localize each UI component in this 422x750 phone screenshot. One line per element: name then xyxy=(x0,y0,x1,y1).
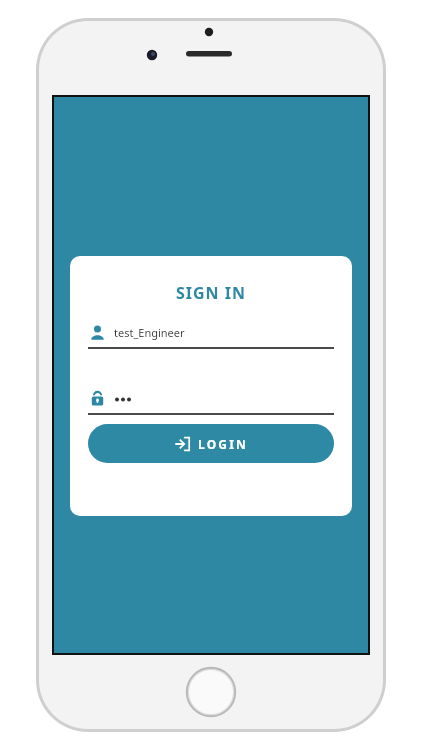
staticText: test_Engineer xyxy=(114,325,185,340)
button[interactable]: test_Engineer xyxy=(90,321,332,343)
staticText: LOGIN xyxy=(198,436,249,452)
staticText: SIGN IN xyxy=(70,282,352,304)
other: Home xyxy=(187,668,235,716)
button[interactable]: LOGIN xyxy=(88,424,334,463)
button[interactable] xyxy=(90,387,332,409)
